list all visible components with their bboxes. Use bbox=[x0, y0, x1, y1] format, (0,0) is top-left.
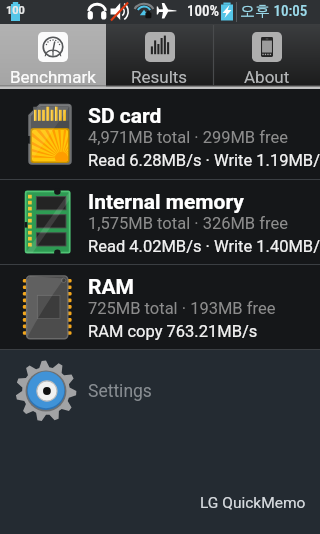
staticText: 오후 10:05 bbox=[240, 2, 308, 21]
staticText: Settings bbox=[88, 381, 152, 402]
staticText: SD card bbox=[88, 104, 162, 129]
other: Settings bbox=[15, 360, 77, 422]
staticText: About bbox=[244, 67, 290, 87]
button[interactable]: About bbox=[213, 24, 320, 89]
staticText: RAM bbox=[88, 275, 134, 300]
button[interactable]: RAM bbox=[0, 265, 320, 349]
staticText: 100% bbox=[187, 2, 220, 20]
staticText: Benchmark bbox=[10, 67, 96, 87]
staticText: RAM copy 763.21MB/s bbox=[88, 322, 258, 341]
staticText: Read 6.28MB/s · Write 1.19MB/s bbox=[88, 151, 320, 170]
staticText: 4,971MB total · 299MB free bbox=[88, 128, 288, 147]
button[interactable]: Internal memory bbox=[0, 180, 320, 264]
staticText: Internal memory bbox=[88, 190, 244, 215]
button[interactable]: Results bbox=[106, 24, 213, 89]
button[interactable]: Settings bbox=[0, 350, 320, 432]
staticText: Read 4.02MB/s · Write 1.40MB/s bbox=[88, 237, 320, 256]
staticText: 725MB total · 193MB free bbox=[88, 299, 276, 318]
staticText: 1,575MB total · 326MB free bbox=[88, 214, 288, 233]
staticText: LG QuickMemo bbox=[200, 494, 306, 512]
staticText: Results bbox=[131, 67, 188, 87]
button[interactable]: SD card bbox=[0, 89, 320, 179]
staticText: 100 bbox=[6, 4, 25, 17]
button[interactable]: Benchmark bbox=[0, 24, 106, 89]
